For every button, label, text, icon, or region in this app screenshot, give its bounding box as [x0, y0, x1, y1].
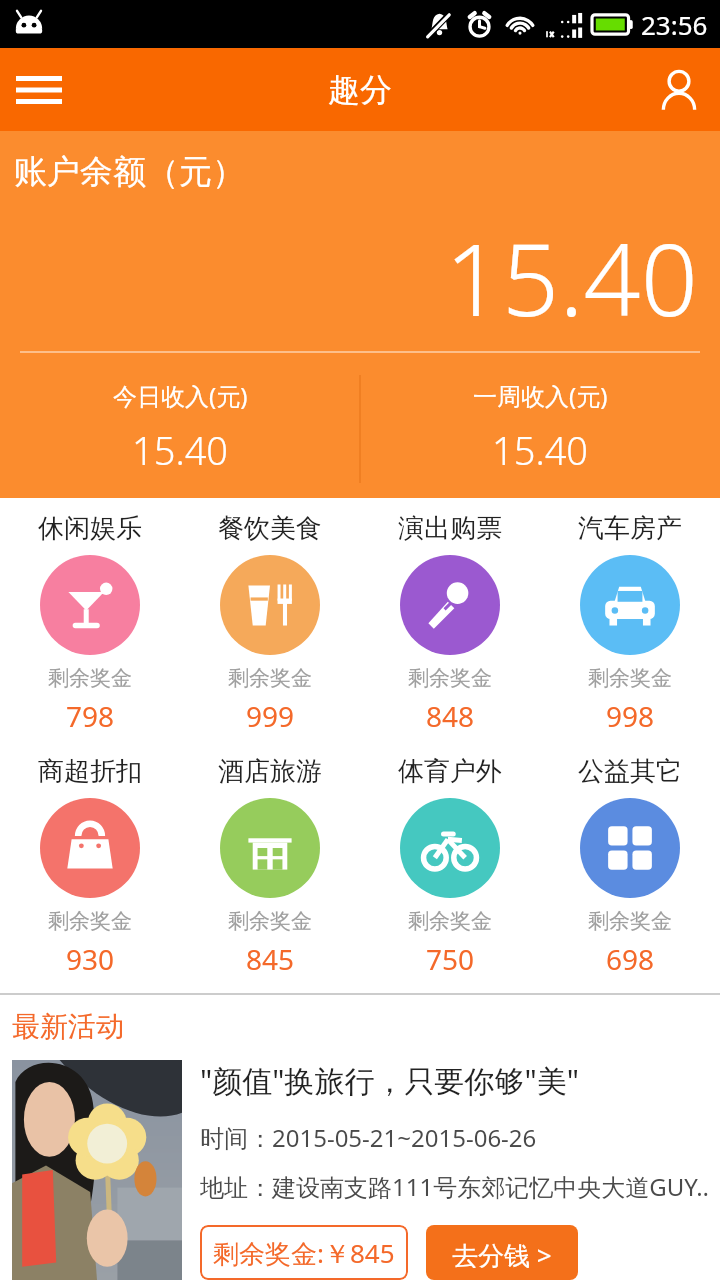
staticText: 地址：建设南支路111号东郊记忆中央大道GUY…	[200, 1170, 710, 1203]
staticText: 750	[426, 940, 475, 978]
staticText: 23:56	[641, 7, 708, 42]
staticText: 汽车房产	[578, 512, 682, 545]
staticText: 930	[66, 940, 115, 978]
button[interactable]: 汽车房产	[540, 498, 720, 741]
staticText: 公益其它	[578, 755, 682, 788]
staticText: 剩余奖金	[228, 908, 312, 934]
button[interactable]: 酒店旅游	[180, 741, 360, 984]
staticText: 999	[246, 697, 295, 735]
staticText: 剩余奖金:￥845	[213, 1235, 395, 1270]
button[interactable]: Menu	[6, 57, 72, 123]
staticText: 趣分	[328, 70, 392, 110]
staticText: "颜值"换旅行，只要你够"美"	[200, 1060, 579, 1101]
staticText: 一周收入(元)	[473, 379, 608, 412]
button[interactable]: 餐饮美食	[180, 498, 360, 741]
button[interactable]: 公益其它	[540, 741, 720, 984]
staticText: 15.40	[132, 424, 229, 476]
staticText: 账户余额（元）	[14, 151, 245, 193]
button[interactable]: 剩余奖金:￥845	[200, 1225, 408, 1280]
staticText: 时间：2015-05-21~2015-06-26	[200, 1121, 537, 1154]
staticText: 演出购票	[398, 512, 502, 545]
staticText: 剩余奖金	[408, 908, 492, 934]
staticText: 剩余奖金	[48, 665, 132, 691]
staticText: 商超折扣	[38, 755, 142, 788]
staticText: 848	[426, 697, 475, 735]
staticText: 15.40	[445, 209, 698, 345]
button[interactable]: 商超折扣	[0, 741, 180, 984]
staticText: 798	[66, 697, 115, 735]
button[interactable]: "颜值"换旅行，只要你够"美"	[0, 1060, 720, 1280]
staticText: 剩余奖金	[588, 665, 672, 691]
staticText: 698	[606, 940, 655, 978]
staticText: 最新活动	[12, 1009, 124, 1044]
staticText: 酒店旅游	[218, 755, 322, 788]
button[interactable]: 去分钱 >	[426, 1225, 578, 1280]
button[interactable]: Account	[646, 57, 712, 123]
staticText: 15.40	[492, 424, 589, 476]
staticText: 餐饮美食	[218, 512, 322, 545]
staticText: 休闲娱乐	[38, 512, 142, 545]
staticText: 998	[606, 697, 655, 735]
staticText: 剩余奖金	[408, 665, 492, 691]
staticText: 剩余奖金	[48, 908, 132, 934]
button[interactable]: 休闲娱乐	[0, 498, 180, 741]
staticText: 今日收入(元)	[113, 379, 248, 412]
staticText: 去分钱 >	[452, 1237, 552, 1268]
staticText: 体育户外	[398, 755, 502, 788]
staticText: 剩余奖金	[588, 908, 672, 934]
staticText: 剩余奖金	[228, 665, 312, 691]
button[interactable]: 演出购票	[360, 498, 540, 741]
staticText: 845	[246, 940, 295, 978]
button[interactable]: 体育户外	[360, 741, 540, 984]
